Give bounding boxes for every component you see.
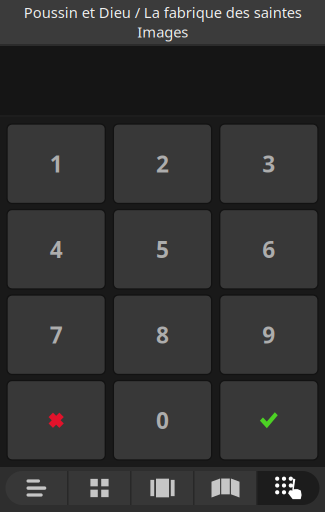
button[interactable]: 4 [7,209,105,289]
button[interactable] [220,380,318,460]
button[interactable]: 8 [113,295,212,374]
staticText: 9 [262,320,275,350]
staticText: 1 [50,149,63,179]
button[interactable]: Keypad [257,471,319,505]
staticText: 5 [156,234,169,264]
staticText: Poussin et Dieu / La fabrique des sainte… [23,2,301,22]
button[interactable]: 2 [113,124,212,203]
button[interactable] [7,380,105,460]
button[interactable]: 6 [220,209,318,289]
button[interactable]: 9 [220,295,318,374]
staticText: 8 [156,320,169,350]
staticText: 0 [156,405,169,435]
staticText: 4 [50,234,63,264]
button[interactable]: Grid [68,471,130,505]
staticText: 2 [156,149,169,179]
button[interactable]: 1 [7,124,105,203]
staticText: Images [137,22,188,41]
button[interactable]: Map [194,471,256,505]
staticText: 3 [262,149,275,179]
button[interactable]: 5 [113,209,212,289]
staticText: 7 [50,320,63,350]
button[interactable]: Columns [131,471,193,505]
staticText: 6 [262,234,275,264]
button[interactable]: 0 [113,380,212,460]
button[interactable]: 7 [7,295,105,374]
button[interactable]: List [5,471,67,505]
button[interactable]: 3 [220,124,318,203]
